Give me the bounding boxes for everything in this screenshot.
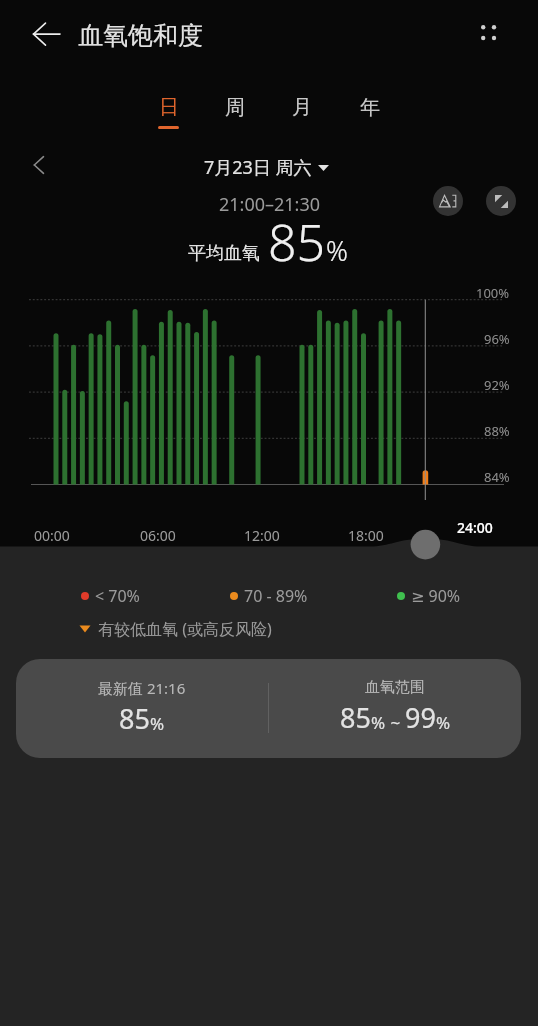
staticText: 平均血氧 xyxy=(188,242,260,265)
staticText: % xyxy=(150,712,165,735)
staticText: 85 xyxy=(340,699,371,736)
staticText: 70 - 89% xyxy=(244,585,308,607)
staticText: 85 xyxy=(119,700,150,737)
staticText: 最新值 21:16 xyxy=(98,678,186,698)
staticText: 18:00 xyxy=(348,526,384,545)
button[interactable]: 周 xyxy=(202,95,268,139)
button[interactable]: 最新值 21:16 xyxy=(16,659,521,758)
staticText: 血氧饱和度 xyxy=(78,20,203,51)
staticText: 年 xyxy=(360,95,380,120)
staticText: 99 xyxy=(405,699,436,736)
button[interactable]: 年 xyxy=(337,95,403,139)
staticText: % xyxy=(371,711,386,734)
staticText: 85 xyxy=(268,208,326,276)
staticText: 日 xyxy=(159,95,179,120)
staticText: 100% xyxy=(476,284,510,302)
staticText: 21:00–21:30 xyxy=(219,192,321,217)
staticText: 12:00 xyxy=(244,526,280,545)
staticText: % xyxy=(326,232,348,269)
staticText: ~ xyxy=(386,711,405,734)
staticText: 24:00 xyxy=(457,518,493,537)
button[interactable]: < 70% xyxy=(81,585,140,607)
button[interactable]: Share image xyxy=(433,186,463,216)
button[interactable]: Previous day xyxy=(23,149,55,181)
staticText: ≥ 90% xyxy=(411,585,461,607)
staticText: 96% xyxy=(484,330,510,348)
staticText: 06:00 xyxy=(140,526,176,545)
button[interactable]: 70 - 89% xyxy=(230,585,308,607)
staticText: 有较低血氧 (或高反风险) xyxy=(98,618,272,640)
staticText: 血氧范围 xyxy=(365,678,425,697)
staticText: 月 xyxy=(292,95,312,120)
staticText: < 70% xyxy=(95,585,140,607)
staticText: 88% xyxy=(484,422,510,440)
button[interactable]: More options xyxy=(469,13,509,53)
staticText: 周 xyxy=(225,95,245,120)
button[interactable]: Back xyxy=(27,14,67,54)
staticText: % xyxy=(436,711,451,734)
button[interactable]: 日 xyxy=(135,95,201,139)
button[interactable]: Change chart type xyxy=(486,186,516,216)
staticText: 7月23日 周六 xyxy=(204,155,312,180)
staticText: 84% xyxy=(484,468,510,486)
staticText: 92% xyxy=(484,376,510,394)
staticText: 00:00 xyxy=(34,526,70,545)
button[interactable]: 月 xyxy=(269,95,335,139)
button[interactable]: ≥ 90% xyxy=(397,585,461,607)
